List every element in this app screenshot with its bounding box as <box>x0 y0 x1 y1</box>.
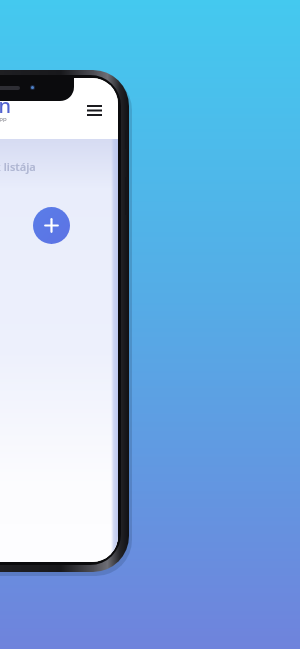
button[interactable]: Menu <box>81 97 107 123</box>
staticText: app <box>0 115 7 123</box>
staticText: en <box>0 92 12 119</box>
staticText: rök listája <box>0 159 36 174</box>
button[interactable]: en <box>0 90 14 129</box>
button[interactable]: Add <box>33 207 70 244</box>
